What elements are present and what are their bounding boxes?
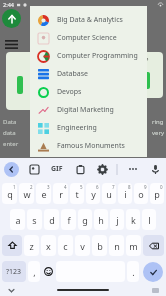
button[interactable]: q (2, 183, 17, 204)
button[interactable]: z (24, 235, 39, 256)
staticText: y (91, 188, 96, 200)
staticText: c (63, 240, 68, 252)
staticText: p (154, 188, 160, 200)
button[interactable]: n (109, 235, 124, 256)
staticText: w (23, 188, 31, 200)
button[interactable]: . (127, 261, 139, 282)
staticText: Computer Programming (57, 51, 138, 61)
staticText: , (33, 266, 36, 278)
staticText: 1 (13, 184, 16, 190)
button[interactable]: p (150, 183, 164, 204)
staticText: 5 (80, 184, 83, 190)
button[interactable]: ?123 (2, 261, 26, 282)
button[interactable]: Digital Marketing (30, 101, 147, 119)
button[interactable]: Menu (3, 36, 19, 52)
staticText: 2 (30, 184, 33, 190)
button[interactable]: f (61, 209, 76, 230)
button[interactable]: Famous Monuments (30, 137, 147, 155)
button[interactable]: b (92, 235, 107, 256)
staticText: 9 (144, 184, 147, 190)
button[interactable]: i (118, 183, 132, 204)
staticText: Digital Marketing (57, 105, 114, 115)
staticText: 0 (160, 184, 163, 190)
button[interactable]: Backspace (143, 235, 164, 256)
button[interactable]: d (44, 209, 59, 230)
button[interactable]: h (94, 209, 108, 230)
button[interactable]: e (36, 183, 51, 204)
button[interactable]: More options (126, 162, 140, 176)
staticText: u (106, 188, 112, 200)
button[interactable]: , (28, 261, 40, 282)
staticText: GIF (51, 164, 63, 174)
staticText: s? (142, 56, 149, 66)
button[interactable]: Back (4, 162, 19, 177)
staticText: 7 (112, 184, 115, 190)
staticText: v (80, 240, 85, 252)
staticText: 3 (47, 184, 50, 190)
button[interactable]: GIF (49, 162, 65, 176)
button[interactable]: y (86, 183, 100, 204)
staticText: Computer Science (57, 33, 117, 43)
staticText: 2:44 (3, 1, 14, 8)
button[interactable]: u (102, 183, 116, 204)
staticText: 6 (96, 184, 99, 190)
staticText: k (131, 214, 136, 226)
button[interactable]: Database (30, 65, 147, 83)
staticText: f (67, 214, 71, 226)
staticText: ?123 (6, 267, 22, 277)
button[interactable]: s (27, 209, 42, 230)
button[interactable]: j (110, 209, 124, 230)
button[interactable]: Shift (2, 235, 22, 256)
button[interactable]: r (53, 183, 68, 204)
staticText: Engineering (57, 123, 97, 133)
button[interactable]: Settings (95, 162, 109, 176)
staticText: Data (3, 118, 17, 126)
button[interactable]: w (19, 183, 34, 204)
button[interactable]: v (75, 235, 90, 256)
staticText: q (7, 188, 13, 200)
button[interactable]: Clipboard (73, 162, 87, 176)
staticText: x (46, 240, 51, 252)
staticText: 8 (128, 184, 131, 190)
button[interactable]: k (126, 209, 140, 230)
other: App logo (2, 9, 21, 28)
button[interactable]: Emoji (41, 261, 55, 282)
staticText: o (138, 188, 144, 200)
button[interactable]: Engineering (30, 119, 147, 137)
staticText: m (129, 240, 138, 252)
staticText: h (98, 214, 104, 226)
button[interactable]: Big Data & Analytics (30, 11, 147, 29)
button[interactable]: l (142, 209, 156, 230)
staticText: . (132, 266, 135, 278)
staticText: ring (152, 118, 164, 126)
button[interactable]: Enter (143, 262, 163, 282)
button[interactable]: Computer Programming (30, 47, 147, 65)
staticText: Big Data & Analytics (57, 15, 123, 25)
button[interactable]: m (126, 235, 141, 256)
staticText: very (152, 129, 164, 137)
button[interactable]: Hide keyboard (6, 285, 16, 295)
button[interactable]: t (70, 183, 84, 204)
button[interactable]: g (78, 209, 92, 230)
staticText: b (97, 240, 103, 252)
staticText: t (75, 188, 79, 200)
button[interactable]: Devops (30, 83, 147, 101)
staticText: j (116, 214, 119, 226)
button[interactable]: Computer Science (30, 29, 147, 47)
button[interactable]: a (10, 209, 25, 230)
staticText: i (124, 188, 127, 200)
staticText: d (49, 214, 55, 226)
button[interactable]: c (58, 235, 73, 256)
staticText: s (32, 214, 37, 226)
button[interactable]: o (134, 183, 148, 204)
button[interactable]: x (41, 235, 56, 256)
button[interactable]: Voice input (148, 162, 162, 176)
staticText: l (148, 214, 151, 226)
staticText: r (59, 188, 63, 200)
staticText: e (41, 188, 47, 200)
staticText: Database (57, 69, 89, 79)
button[interactable]: Stickers (27, 162, 41, 176)
staticText: Devops (57, 87, 82, 97)
staticText: Famous Monuments (57, 141, 125, 151)
